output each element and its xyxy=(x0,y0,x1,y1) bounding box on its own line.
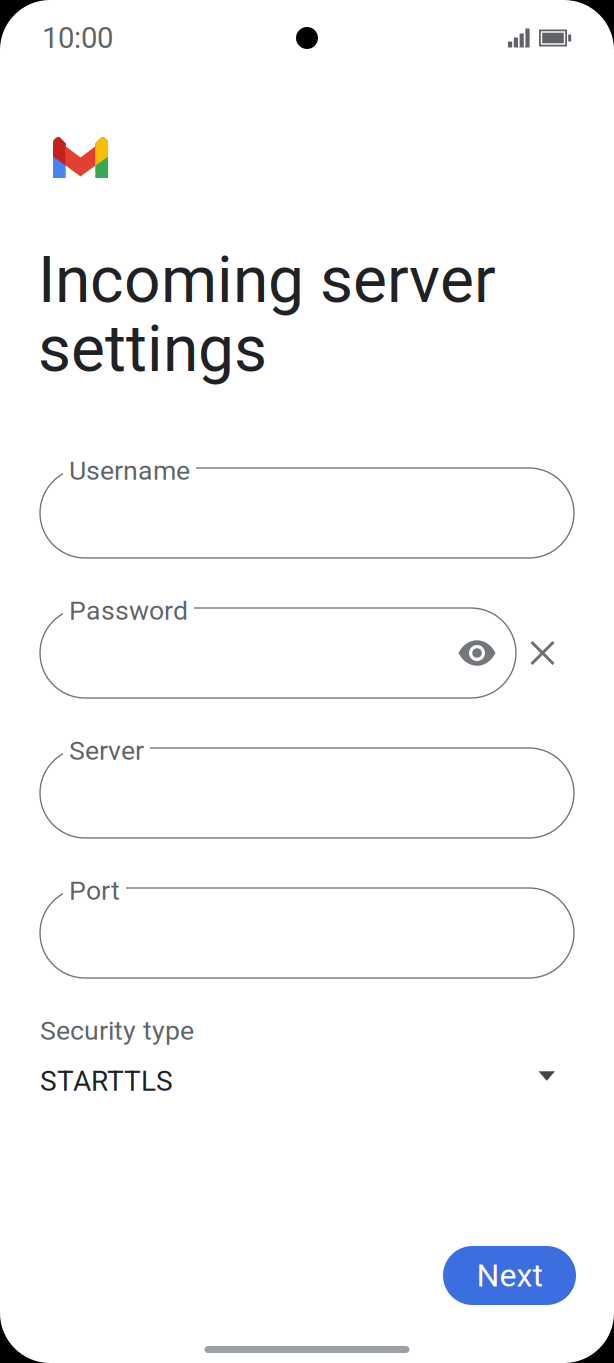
staticText: Port xyxy=(69,875,120,906)
staticText: Username xyxy=(69,455,190,486)
staticText: Server xyxy=(69,735,144,766)
button[interactable]: Clear password xyxy=(516,626,569,679)
staticText: Incoming server xyxy=(38,242,496,317)
staticText: Password xyxy=(69,595,188,626)
staticText: 10:00 xyxy=(42,21,113,55)
staticText: Next xyxy=(476,1257,542,1294)
staticText: settings xyxy=(38,311,267,386)
button[interactable]: STARTTLS xyxy=(40,1060,574,1102)
button[interactable]: Next xyxy=(443,1246,576,1305)
staticText: Security type xyxy=(40,1015,194,1046)
staticText: STARTTLS xyxy=(40,1065,173,1098)
button[interactable]: Show password xyxy=(458,640,516,665)
